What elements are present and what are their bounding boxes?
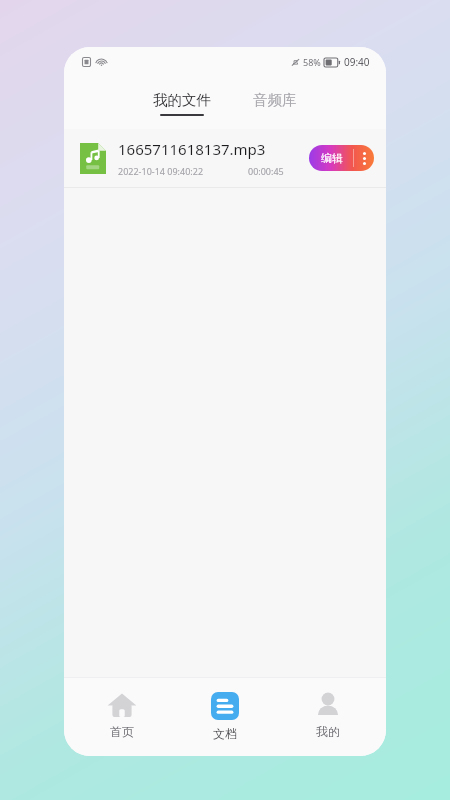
button[interactable]: Profile: [283, 678, 373, 739]
other: Home: [107, 692, 137, 718]
button[interactable]: 1665711618137.mp3: [64, 129, 386, 187]
staticText: 09:40: [344, 55, 370, 69]
other: Profile: [314, 692, 342, 718]
staticText: 58%: [303, 56, 321, 68]
staticText: 编辑: [321, 151, 343, 165]
button[interactable]: Home: [77, 678, 167, 739]
button[interactable]: 我的文件: [145, 87, 219, 120]
staticText: 我的文件: [153, 91, 211, 109]
staticText: 1665711618137.mp3: [118, 139, 266, 159]
staticText: 文档: [213, 726, 237, 741]
button[interactable]: More options: [354, 145, 374, 171]
button[interactable]: 音频库: [245, 87, 305, 120]
staticText: 我的: [316, 724, 340, 739]
other: Documents: [211, 692, 239, 720]
staticText: 首页: [110, 724, 134, 739]
button[interactable]: 编辑: [309, 151, 353, 165]
button[interactable]: Documents: [180, 678, 270, 741]
staticText: 00:00:45: [248, 165, 284, 177]
staticText: 2022-10-14 09:40:22: [118, 165, 204, 177]
staticText: 音频库: [253, 91, 297, 109]
